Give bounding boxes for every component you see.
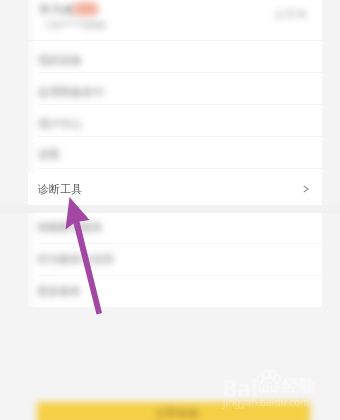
staticText: 更多服务: [37, 284, 81, 298]
staticText: 云空间: [274, 7, 307, 21]
staticText: 华为服务与支持: [37, 252, 114, 266]
staticText: jingyan.baidu.com: [223, 395, 310, 409]
staticText: 应用和服务中: [38, 85, 104, 99]
button[interactable]: 立即体验: [30, 396, 317, 420]
staticText: 智能家居服务: [37, 220, 103, 234]
staticText: 诊断工具: [38, 182, 82, 196]
staticText: 华为账: [38, 1, 77, 17]
staticText: Bai: [222, 372, 258, 403]
staticText: 136****8888: [44, 18, 107, 32]
staticText: 用户中心: [38, 117, 82, 131]
other: Annotation arrow: [0, 0, 340, 420]
staticText: 立即体验: [155, 406, 199, 420]
staticText: 我的设备: [38, 53, 82, 67]
button[interactable]: 诊断工具: [28, 173, 322, 205]
staticText: 经验: [282, 376, 316, 397]
staticText: 设置: [38, 147, 60, 161]
